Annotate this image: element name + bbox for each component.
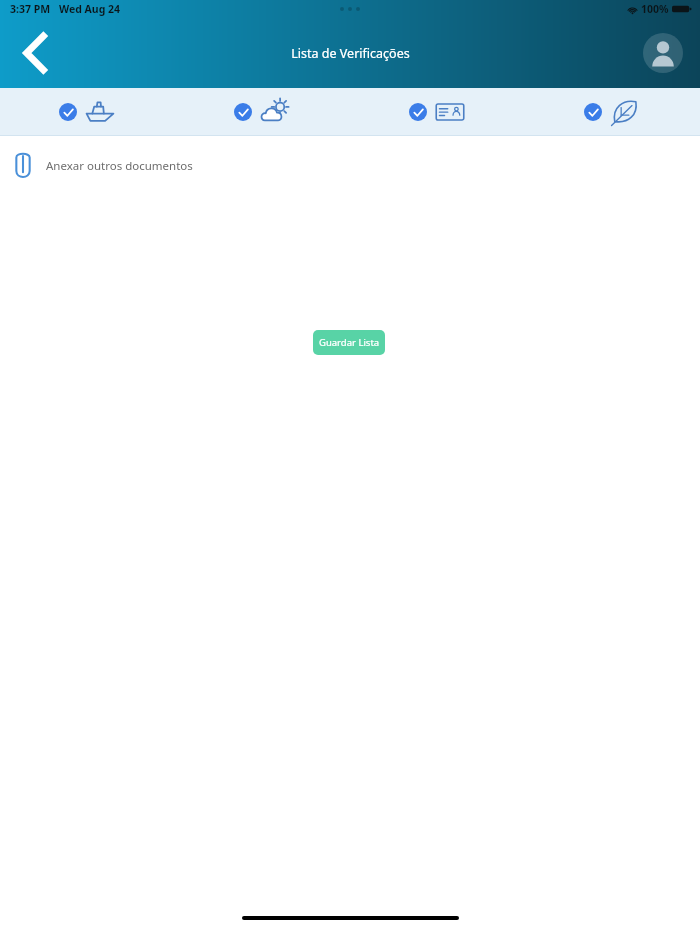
- button[interactable]: Weather: [175, 88, 350, 136]
- button[interactable]: Back: [10, 28, 60, 78]
- button[interactable]: Profile: [643, 33, 683, 73]
- staticText: Wed Aug 24: [59, 2, 121, 16]
- button[interactable]: Vessel: [0, 88, 175, 136]
- staticText: 3:37 PM: [10, 2, 51, 16]
- staticText: Lista de Verificações: [291, 45, 410, 62]
- staticText: Guardar Lista: [319, 336, 380, 349]
- button[interactable]: Anexar outros documentos: [0, 136, 700, 196]
- button[interactable]: Environment: [525, 88, 700, 136]
- staticText: 100%: [641, 2, 669, 16]
- button[interactable]: Crew ID: [350, 88, 525, 136]
- button[interactable]: Guardar Lista: [313, 330, 385, 355]
- staticText: Anexar outros documentos: [46, 158, 193, 174]
